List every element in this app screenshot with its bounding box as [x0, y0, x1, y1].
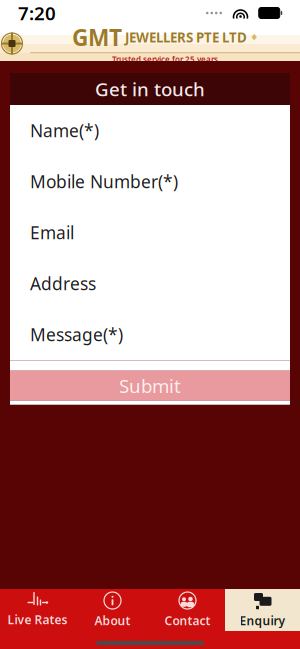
staticText: Enquiry: [239, 612, 285, 628]
staticText: JEWELLERS PTE LTD: [125, 28, 247, 46]
staticText: Email: [30, 221, 74, 244]
button[interactable]: Mobile Number(*): [10, 156, 290, 207]
staticText: GMT: [72, 22, 122, 52]
staticText: 7:20: [18, 1, 56, 25]
staticText: Trusted service for 25 years: [112, 54, 218, 65]
button[interactable]: Email: [10, 207, 290, 258]
button[interactable]: Live Rates: [0, 589, 75, 631]
staticText: Live Rates: [7, 611, 67, 627]
button[interactable]: Name(*): [10, 105, 290, 156]
staticText: Contact: [164, 612, 210, 628]
staticText: ♦: [250, 32, 258, 43]
staticText: Address: [30, 272, 96, 295]
staticText: Name(*): [30, 119, 99, 142]
button[interactable]: Enquiry: [225, 589, 300, 631]
staticText: Message(*): [30, 323, 123, 346]
staticText: About: [94, 612, 130, 628]
button[interactable]: Contact: [150, 589, 225, 631]
button[interactable]: Message(*): [10, 309, 290, 360]
staticText: Mobile Number(*): [30, 170, 178, 193]
button[interactable]: Address: [10, 258, 290, 309]
button[interactable]: Submit: [10, 371, 290, 401]
staticText: Get in touch: [95, 77, 205, 101]
button[interactable]: About: [75, 589, 150, 631]
staticText: Submit: [119, 373, 181, 398]
